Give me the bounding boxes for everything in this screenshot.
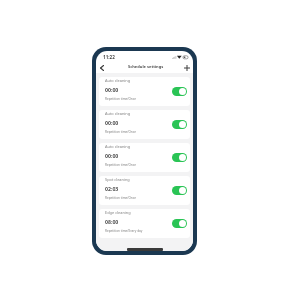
staticText: Auto cleaning bbox=[105, 111, 131, 116]
staticText: Auto cleaning bbox=[105, 144, 131, 149]
staticText: 11:22 bbox=[103, 54, 115, 60]
button[interactable]: Edge cleaning bbox=[99, 209, 190, 238]
staticText: Repetition time/Once bbox=[105, 196, 136, 200]
staticText: Repetition time/Once bbox=[105, 97, 136, 101]
button[interactable]: Auto cleaning bbox=[99, 110, 190, 139]
staticText: 08:00 bbox=[105, 218, 119, 225]
staticText: Spot cleaning bbox=[105, 177, 130, 182]
staticText: Schedule settings bbox=[128, 64, 164, 69]
button[interactable]: Back bbox=[97, 63, 107, 73]
staticText: Repetition time/Every day bbox=[105, 229, 143, 233]
staticText: 00:00 bbox=[105, 152, 119, 159]
staticText: Edge cleaning bbox=[105, 210, 131, 215]
staticText: 00:00 bbox=[105, 86, 119, 93]
staticText: Repetition time/Once bbox=[105, 130, 136, 134]
button[interactable]: Toggle schedule bbox=[172, 153, 187, 162]
button[interactable]: Auto cleaning bbox=[99, 143, 190, 172]
staticText: Auto cleaning bbox=[105, 78, 131, 83]
staticText: Repetition time/Once bbox=[105, 163, 136, 167]
button[interactable]: Toggle schedule bbox=[172, 219, 187, 228]
button[interactable]: Spot cleaning bbox=[99, 176, 190, 205]
button[interactable]: Add schedule bbox=[182, 63, 192, 73]
button[interactable]: Toggle schedule bbox=[172, 87, 187, 96]
button[interactable]: Auto cleaning bbox=[99, 77, 190, 106]
staticText: 02:03 bbox=[105, 185, 119, 192]
button[interactable]: Toggle schedule bbox=[172, 120, 187, 129]
staticText: 00:00 bbox=[105, 119, 119, 126]
button[interactable]: Toggle schedule bbox=[172, 186, 187, 195]
